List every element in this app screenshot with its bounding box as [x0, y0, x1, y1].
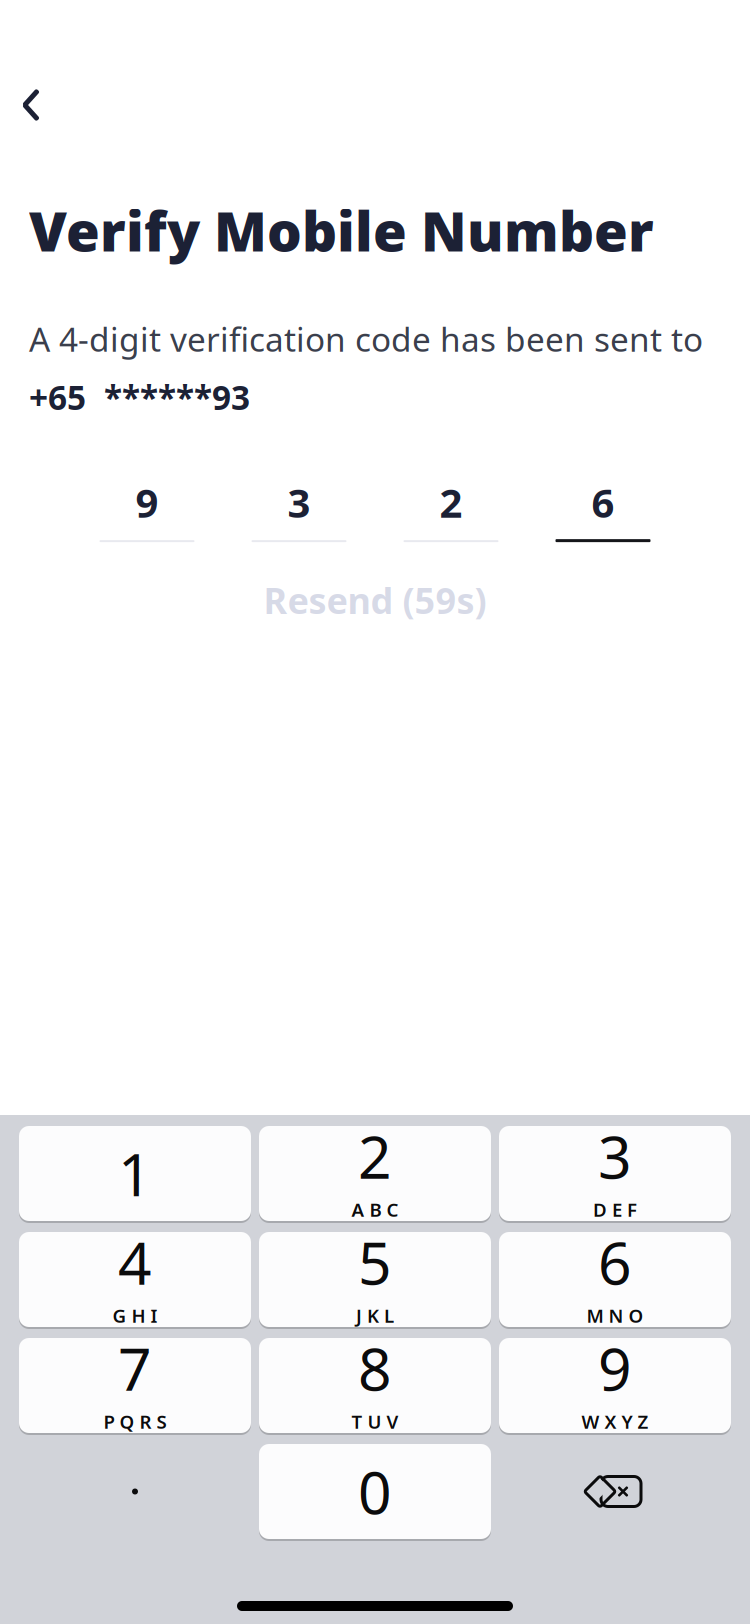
- staticText: 1: [118, 1134, 152, 1212]
- staticText: 4: [118, 1223, 152, 1301]
- staticText: 3: [287, 476, 310, 529]
- staticText: 6: [591, 476, 614, 529]
- button[interactable]: Decimal point: [19, 1443, 251, 1540]
- staticText: W X Y Z: [581, 1409, 648, 1434]
- button[interactable]: 2: [259, 1125, 491, 1222]
- button[interactable]: 9: [499, 1337, 731, 1434]
- button[interactable]: 8: [259, 1337, 491, 1434]
- button[interactable]: 3: [499, 1125, 731, 1222]
- staticText: 5: [358, 1223, 392, 1301]
- staticText: 0: [358, 1452, 392, 1530]
- staticText: A 4-digit verification code has been sen…: [29, 317, 703, 361]
- button[interactable]: 7: [19, 1337, 251, 1434]
- staticText: D E F: [593, 1197, 637, 1222]
- staticText: 9: [598, 1329, 632, 1407]
- staticText: +65 ******93: [29, 375, 250, 419]
- staticText: 2: [358, 1117, 392, 1195]
- staticText: Resend (59s): [263, 576, 486, 624]
- staticText: 2: [439, 476, 462, 529]
- staticText: 6: [598, 1223, 632, 1301]
- button[interactable]: 5: [259, 1231, 491, 1328]
- button[interactable]: 1: [19, 1125, 251, 1222]
- button[interactable]: 4: [19, 1231, 251, 1328]
- staticText: 3: [598, 1117, 632, 1195]
- staticText: T U V: [351, 1409, 398, 1434]
- staticText: P Q R S: [103, 1409, 166, 1434]
- staticText: A B C: [351, 1197, 398, 1222]
- staticText: G H I: [112, 1303, 157, 1328]
- staticText: Verify Mobile Number: [29, 194, 654, 267]
- staticText: 7: [118, 1329, 152, 1407]
- button[interactable]: Delete: [499, 1443, 731, 1540]
- staticText: 8: [358, 1329, 392, 1407]
- button[interactable]: Resend (59s): [239, 568, 510, 632]
- staticText: M N O: [586, 1303, 643, 1328]
- staticText: J K L: [356, 1303, 394, 1328]
- button[interactable]: 6: [499, 1231, 731, 1328]
- staticText: 9: [135, 476, 158, 529]
- button[interactable]: 0: [259, 1443, 491, 1540]
- button[interactable]: Back: [0, 78, 44, 132]
